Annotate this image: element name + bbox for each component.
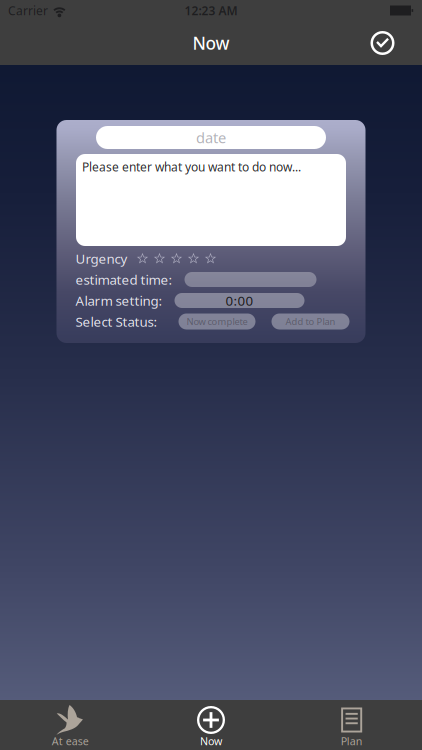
staticText: 12:23 AM	[184, 2, 237, 18]
staticText: Now	[192, 31, 229, 54]
staticText: At ease	[52, 734, 89, 748]
button[interactable]: Mark done	[356, 21, 422, 64]
staticText: Please enter what you want to do now...	[82, 159, 301, 175]
staticText: Now	[200, 734, 222, 748]
button[interactable]: At ease	[0, 700, 141, 750]
staticText: 0:00	[225, 292, 253, 309]
button[interactable]: Now	[141, 700, 281, 750]
staticText: Alarm setting:	[75, 292, 162, 309]
staticText: Carrier	[8, 2, 48, 18]
staticText: Add to Plan	[285, 315, 335, 328]
staticText: estimated time:	[75, 271, 172, 288]
staticText: Select Status:	[75, 313, 157, 330]
staticText: Plan	[341, 734, 363, 748]
button[interactable]: Add to Plan	[271, 313, 349, 329]
button[interactable]: date	[96, 126, 326, 149]
button[interactable]: Now complete	[178, 313, 255, 329]
staticText: Now complete	[186, 315, 247, 328]
staticText: date	[196, 128, 226, 147]
staticText: Urgency	[75, 250, 127, 267]
button[interactable]: Plan	[281, 700, 422, 750]
